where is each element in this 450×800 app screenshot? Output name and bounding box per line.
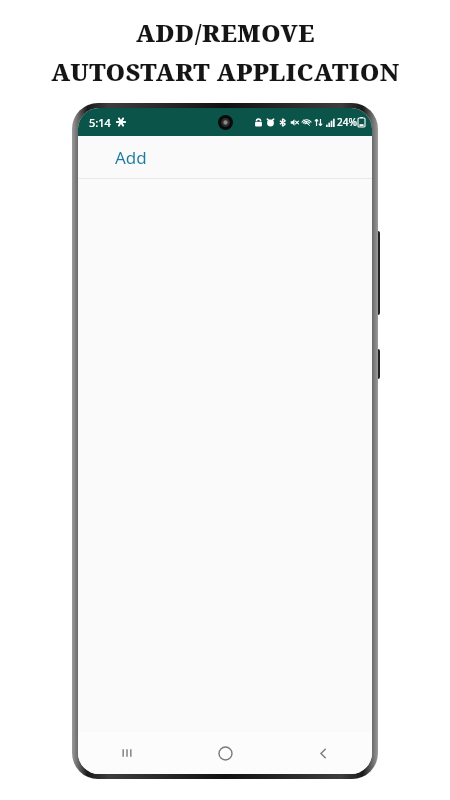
staticText: AUTOSTART APPLICATION xyxy=(51,55,400,88)
staticText: Add xyxy=(115,146,147,169)
staticText: ADD/REMOVE xyxy=(136,16,315,49)
staticText: 24% xyxy=(337,115,357,129)
button[interactable]: Add xyxy=(78,136,372,178)
button[interactable]: Recents xyxy=(78,732,176,774)
staticText: 5:14 xyxy=(89,115,111,130)
button[interactable]: Back xyxy=(274,732,372,774)
button[interactable]: Home xyxy=(176,732,274,774)
